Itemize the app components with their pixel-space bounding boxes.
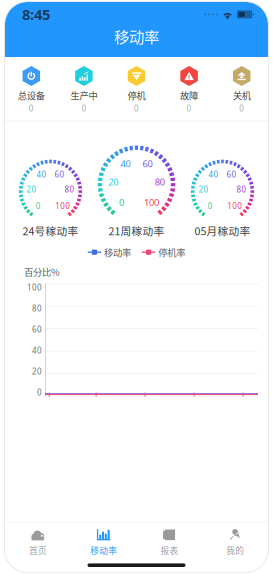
staticText: 40 [32, 345, 42, 356]
button[interactable]: 首页 [5, 522, 71, 560]
staticText: 移动率 [114, 25, 159, 47]
button[interactable]: 故障 [163, 66, 215, 114]
staticText: 05月稼动率 [194, 223, 250, 238]
staticText: 100 [144, 196, 159, 208]
staticText: 40 [36, 169, 46, 180]
button[interactable]: 移动率 [71, 522, 137, 560]
staticText: 0 [239, 103, 244, 114]
staticText: 40 [120, 157, 130, 170]
staticText: 0 [36, 201, 41, 211]
staticText: 80 [236, 184, 246, 195]
button[interactable]: 停机 [110, 66, 163, 114]
button[interactable]: 总设备 [5, 66, 58, 114]
staticText: 生产中 [70, 88, 97, 102]
staticText: 100 [55, 201, 70, 211]
staticText: 80 [32, 303, 42, 314]
staticText: 20 [32, 366, 42, 377]
button[interactable]: 我的 [202, 522, 268, 560]
staticText: 关机 [233, 88, 251, 102]
staticText: 100 [27, 282, 42, 293]
staticText: 20 [198, 184, 208, 195]
staticText: 0 [134, 103, 139, 114]
button[interactable]: 报表 [136, 522, 202, 560]
staticText: 移动率 [104, 245, 131, 259]
staticText: 0 [37, 387, 42, 398]
staticText: 停机 [127, 88, 145, 102]
staticText: 首页 [29, 544, 47, 556]
staticText: 0 [119, 196, 124, 208]
staticText: 0 [187, 103, 192, 114]
staticText: 40 [208, 169, 218, 180]
staticText: 0 [81, 103, 86, 114]
staticText: 80 [155, 176, 165, 188]
staticText: 20 [108, 176, 118, 188]
staticText: 24号稼动率 [22, 223, 78, 238]
staticText: 100 [227, 201, 242, 211]
staticText: 0 [208, 201, 213, 211]
staticText: 60 [142, 157, 152, 170]
staticText: 8:45 [22, 5, 50, 24]
staticText: 60 [32, 324, 42, 335]
staticText: 我的 [226, 544, 244, 556]
staticText: 故障 [180, 88, 198, 102]
staticText: 报表 [160, 544, 178, 556]
staticText: 0 [29, 103, 34, 114]
staticText: 停机率 [158, 245, 185, 259]
button[interactable]: 关机 [215, 66, 268, 114]
staticText: 60 [226, 169, 236, 180]
staticText: 60 [54, 169, 64, 180]
staticText: 21周稼动率 [108, 223, 164, 238]
staticText: 80 [64, 184, 74, 195]
staticText: 20 [26, 184, 36, 195]
staticText: 总设备 [18, 88, 45, 102]
button[interactable]: 生产中 [58, 66, 110, 114]
staticText: 百分比% [24, 265, 60, 278]
staticText: 移动率 [90, 544, 117, 556]
